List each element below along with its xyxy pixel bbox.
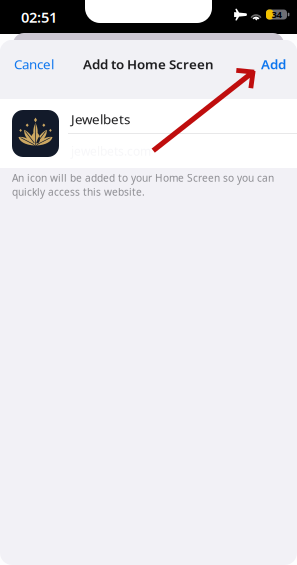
button[interactable]: Add [218, 51, 297, 77]
staticText: An icon will be added to your Home Scree… [12, 171, 274, 199]
staticText: Cancel [14, 55, 54, 73]
staticText: Jewelbets [71, 110, 130, 128]
staticText: 02:51 [21, 7, 57, 27]
staticText: Add [261, 55, 286, 73]
button[interactable]: Cancel [0, 51, 82, 77]
staticText: 34 [271, 8, 281, 21]
staticText: Add to Home Screen [83, 55, 214, 73]
